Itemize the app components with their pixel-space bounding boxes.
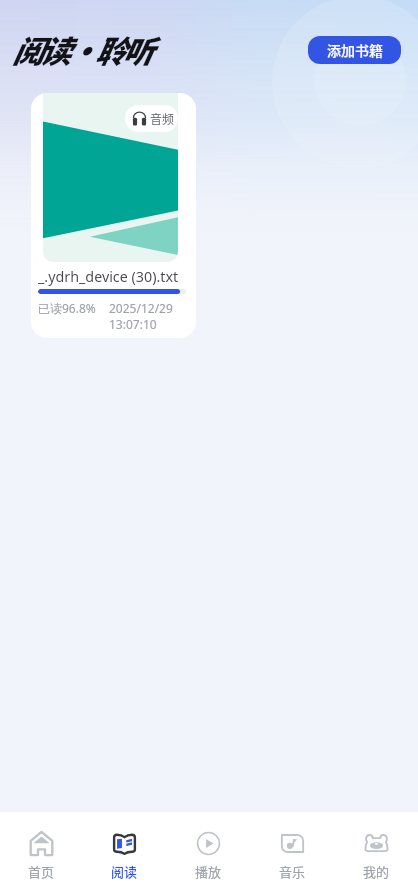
staticText: 添加书籍 xyxy=(327,40,383,60)
button[interactable]: 播放 xyxy=(166,812,250,882)
other: 阅读 xyxy=(111,830,138,857)
other: 我的 xyxy=(363,830,390,857)
button[interactable]: 阅读 xyxy=(83,812,166,882)
staticText: 音乐 xyxy=(279,862,306,881)
button[interactable]: 添加书籍 xyxy=(308,36,401,64)
staticText: 音频 xyxy=(150,110,175,127)
staticText: 播放 xyxy=(195,862,222,881)
button[interactable]: 音频 xyxy=(31,93,196,338)
other: 首页 xyxy=(28,830,55,857)
staticText: 我的 xyxy=(363,862,390,881)
staticText: 13:07:10 xyxy=(109,316,157,332)
button[interactable]: 我的 xyxy=(334,812,418,882)
other: 音乐 xyxy=(279,830,306,857)
button[interactable]: 音乐 xyxy=(250,812,334,882)
staticText: 已读96.8% xyxy=(38,300,96,316)
button[interactable]: 首页 xyxy=(0,812,83,882)
staticText: 阅读·聆听 xyxy=(12,27,150,72)
other: 播放 xyxy=(195,830,222,857)
staticText: _.ydrh_device (30).txt xyxy=(38,267,179,286)
staticText: 首页 xyxy=(28,862,55,881)
staticText: 阅读 xyxy=(111,862,138,881)
staticText: 2025/12/29 xyxy=(109,300,173,316)
